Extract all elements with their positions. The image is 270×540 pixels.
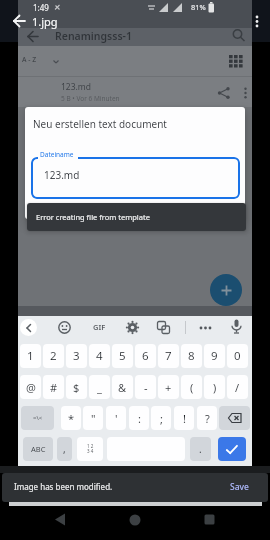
- button[interactable]: ;: [151, 406, 171, 430]
- staticText: #: [50, 380, 58, 395]
- button[interactable]: .: [190, 437, 211, 461]
- button[interactable]: [243, 87, 248, 99]
- button[interactable]: GIF: [87, 317, 111, 337]
- button[interactable]: 0: [227, 344, 248, 368]
- button[interactable]: [20, 319, 37, 336]
- staticText: /: [235, 380, 240, 395]
- button[interactable]: :: [129, 406, 149, 430]
- staticText: Image has been modified.: [14, 481, 113, 492]
- button[interactable]: =\<: [21, 406, 54, 430]
- button[interactable]: [18, 77, 252, 106]
- button[interactable]: &: [112, 375, 133, 399]
- button[interactable]: 1: [20, 344, 41, 368]
- button[interactable]: _: [89, 375, 110, 399]
- button[interactable]: 9: [204, 344, 225, 368]
- staticText: .: [199, 442, 202, 456]
- staticText: GIF: [93, 322, 106, 332]
- button[interactable]: @: [20, 375, 41, 399]
- staticText: ': [115, 411, 118, 426]
- button[interactable]: #: [43, 375, 64, 399]
- button[interactable]: [126, 321, 139, 334]
- button[interactable]: !: [174, 406, 194, 430]
- staticText: Error creating file from template: [36, 212, 150, 222]
- staticText: Renamingsss-1: [55, 29, 132, 43]
- staticText: (: [190, 380, 194, 395]
- staticText: Save: [230, 481, 249, 493]
- staticText: 8: [188, 348, 195, 364]
- button[interactable]: [199, 326, 212, 330]
- staticText: 3: [73, 348, 80, 364]
- button[interactable]: -: [135, 375, 156, 399]
- staticText: 5 B • Vor 6 Minuten: [61, 94, 120, 103]
- button[interactable]: ): [204, 375, 225, 399]
- button[interactable]: Save: [222, 477, 256, 497]
- button[interactable]: [129, 514, 141, 526]
- staticText: 4: [96, 348, 103, 364]
- button[interactable]: ,: [57, 437, 72, 461]
- staticText: 123.md: [61, 81, 92, 93]
- button[interactable]: 7: [158, 344, 179, 368]
- staticText: $: [73, 380, 80, 395]
- staticText: 1 2 3 4: [87, 443, 94, 455]
- staticText: 1: [27, 348, 34, 364]
- staticText: 123.md: [44, 168, 80, 182]
- button[interactable]: [232, 29, 246, 42]
- staticText: ": [91, 411, 96, 426]
- button[interactable]: ': [106, 406, 126, 430]
- button[interactable]: $: [66, 375, 87, 399]
- button[interactable]: [254, 15, 260, 28]
- button[interactable]: +: [158, 375, 179, 399]
- staticText: @: [26, 380, 36, 395]
- staticText: 0: [234, 348, 241, 364]
- button[interactable]: /: [227, 375, 248, 399]
- button[interactable]: [157, 321, 170, 334]
- staticText: 5: [119, 348, 126, 364]
- button[interactable]: ": [83, 406, 103, 430]
- button[interactable]: *: [61, 406, 81, 430]
- button[interactable]: 4: [89, 344, 110, 368]
- staticText: Dateiname: [40, 150, 74, 159]
- staticText: 9: [211, 348, 218, 364]
- staticText: *: [68, 411, 75, 426]
- staticText: _: [97, 380, 102, 395]
- staticText: 2: [50, 348, 57, 364]
- staticText: ,: [63, 442, 66, 456]
- button[interactable]: ?: [197, 406, 217, 430]
- staticText: 7: [165, 348, 172, 364]
- staticText: -: [144, 380, 148, 395]
- button[interactable]: 2: [43, 344, 64, 368]
- staticText: !: [183, 411, 186, 426]
- button[interactable]: [204, 514, 215, 525]
- button[interactable]: 8: [181, 344, 202, 368]
- button[interactable]: [210, 274, 242, 306]
- button[interactable]: [20, 52, 66, 70]
- button[interactable]: [229, 55, 243, 68]
- staticText: 1:49: [33, 2, 49, 13]
- button[interactable]: 3: [66, 344, 87, 368]
- staticText: +: [165, 380, 172, 395]
- staticText: 6: [142, 348, 149, 364]
- staticText: ;: [160, 411, 163, 426]
- button[interactable]: [54, 513, 67, 526]
- button[interactable]: 5: [112, 344, 133, 368]
- button[interactable]: ABC: [23, 437, 53, 461]
- staticText: ?: [205, 411, 210, 426]
- button[interactable]: [217, 87, 231, 99]
- button[interactable]: 6: [135, 344, 156, 368]
- staticText: &: [118, 380, 127, 395]
- button[interactable]: [218, 437, 246, 461]
- button[interactable]: [31, 157, 240, 199]
- button[interactable]: [13, 15, 26, 27]
- staticText: Neu erstellen text document: [33, 117, 167, 131]
- button[interactable]: [219, 406, 250, 430]
- button[interactable]: 1 2 3 4: [77, 437, 103, 461]
- staticText: ): [213, 380, 217, 395]
- button[interactable]: [231, 319, 242, 335]
- button[interactable]: (: [181, 375, 202, 399]
- button[interactable]: [58, 321, 71, 334]
- staticText: 81%: [191, 2, 206, 12]
- staticText: =\<: [33, 414, 43, 422]
- staticText: ABC: [31, 444, 46, 454]
- staticText: A - Z: [22, 55, 37, 64]
